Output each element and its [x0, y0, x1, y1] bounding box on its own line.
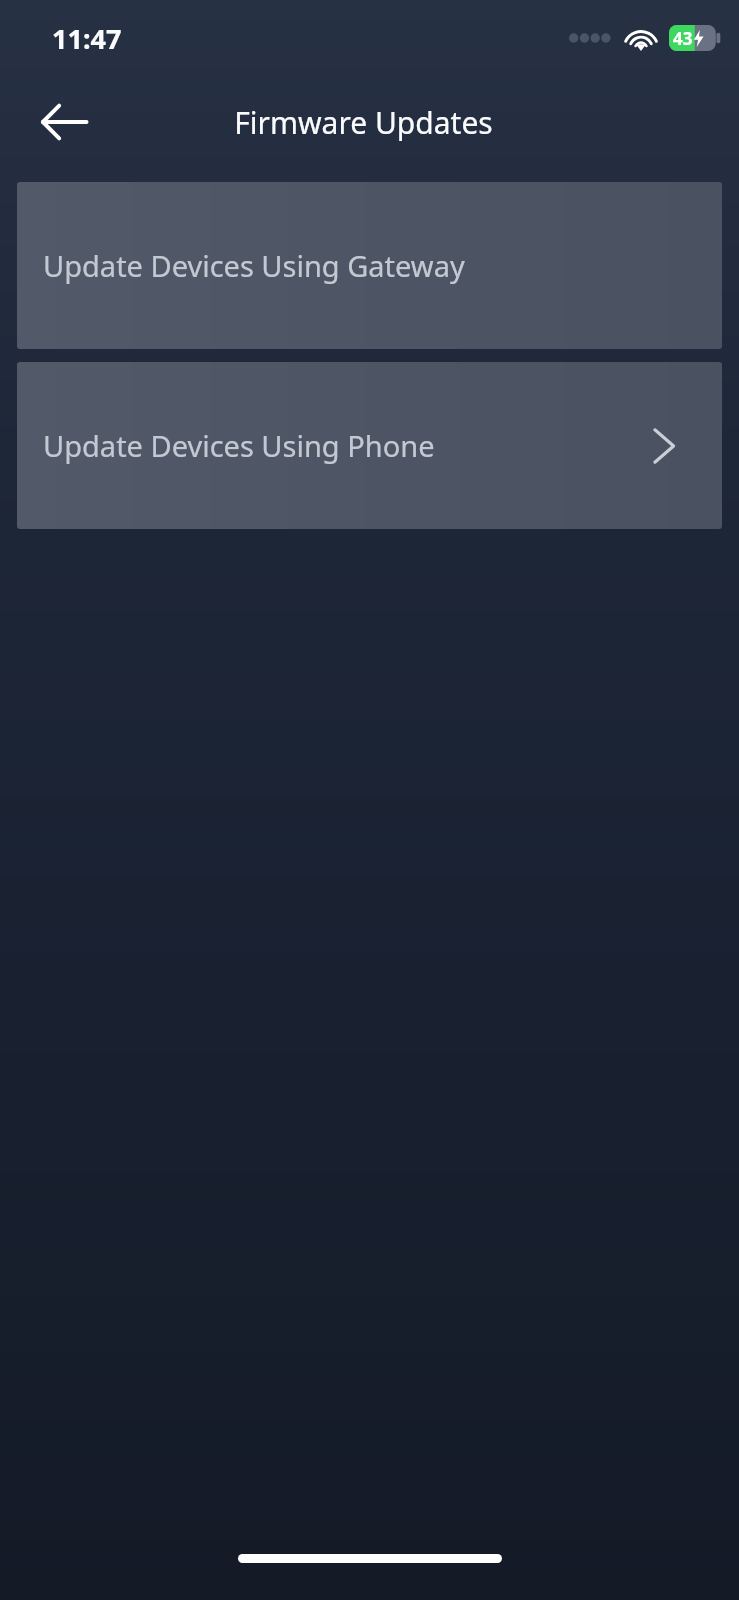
staticText: 43 — [673, 27, 693, 50]
button[interactable]: Back — [34, 92, 94, 152]
button[interactable]: Update Devices Using Gateway — [17, 182, 722, 349]
staticText: Update Devices Using Phone — [43, 426, 435, 465]
button[interactable]: Update Devices Using Phone — [17, 362, 722, 529]
staticText: Update Devices Using Gateway — [43, 246, 465, 285]
staticText: Firmware Updates — [234, 102, 493, 143]
staticText: 11:47 — [52, 20, 122, 57]
